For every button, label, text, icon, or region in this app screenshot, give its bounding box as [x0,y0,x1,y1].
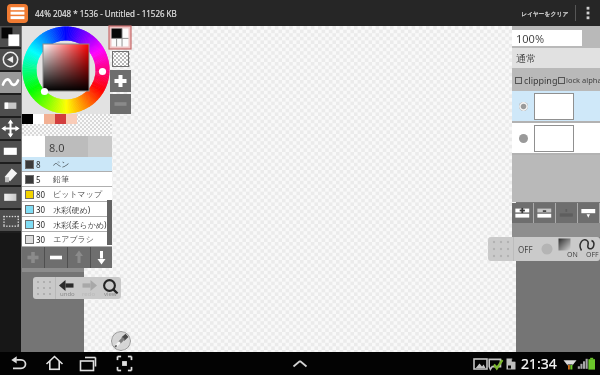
button[interactable]: 100% [512,30,582,46]
staticText: OFF [586,250,599,260]
button[interactable]: 5 [22,172,112,186]
button[interactable]: Layer action [512,203,533,223]
staticText: view [104,290,117,298]
staticText: redo [82,290,96,298]
button[interactable]: Tool [0,118,21,139]
button[interactable]: Menu [7,4,28,23]
staticText: エアブラシ [53,234,94,244]
button[interactable] [512,91,600,121]
staticText: clipping [524,74,558,86]
staticText: 30 [36,234,46,245]
staticText: 8 [36,159,41,170]
button[interactable]: Home [43,352,66,375]
button[interactable]: Redo [78,277,100,299]
button[interactable]: Add colour [110,70,131,92]
staticText: OFF [518,244,533,255]
button[interactable]: Tool [0,164,21,185]
button[interactable]: Transparent [112,51,129,67]
button[interactable]: Layer action [578,203,599,223]
button[interactable]: 30 [22,232,112,246]
button[interactable]: Fade on [558,237,579,261]
button[interactable]: 30 [22,217,112,231]
button[interactable]: More options [576,0,600,26]
staticText: 44% 2048 * 1536 - Untitled - 11526 KB [35,8,177,19]
staticText: 21:34 [521,354,557,373]
staticText: 水彩(柔らかめ) [53,219,107,230]
button[interactable]: 通常 [512,48,600,68]
staticText: 水彩(硬め) [53,204,91,215]
staticText: 30 [36,204,46,215]
button[interactable]: Tool [0,187,21,208]
staticText: ON [567,250,578,260]
button[interactable]: Brush action [45,247,67,268]
button[interactable]: Current colour [109,26,131,49]
button[interactable]: Colour picker [111,331,131,351]
button[interactable] [512,123,600,153]
button[interactable]: Remove colour [110,94,131,114]
staticText: 5 [36,174,41,185]
button[interactable]: Stabilizer off [514,237,536,261]
button[interactable]: Stabilizer settings off [579,237,600,261]
button[interactable]: Back [7,352,30,375]
button[interactable]: Tool [0,26,21,47]
button[interactable]: Brush opacity [536,237,558,261]
button[interactable]: View [100,277,121,299]
button[interactable]: Brush action [68,247,90,268]
staticText: 100% [516,31,545,46]
button[interactable]: Layer action [556,203,577,223]
button[interactable]: Tool [0,210,21,231]
staticText: 8.0 [49,140,65,155]
button[interactable]: Layer action [534,203,555,223]
staticText: ビットマップ [53,189,103,199]
button[interactable]: Brush action [91,247,112,268]
button[interactable]: Expand notifications [289,353,311,375]
staticText: 80 [36,189,46,200]
staticText: 鉛筆 [53,174,69,184]
staticText: 通常 [516,52,536,65]
button[interactable]: Undo [56,277,78,299]
button[interactable]: Recents [77,352,100,375]
button[interactable]: Tool [0,72,21,93]
button[interactable]: Tool [0,95,21,116]
staticText: 30 [36,219,46,230]
button[interactable]: lock alpha [558,75,600,85]
button[interactable]: clipping [515,74,558,86]
staticText: lock alpha [566,75,600,85]
button[interactable]: Brush action [22,247,44,268]
button[interactable]: レイヤーをクリア [515,10,575,17]
staticText: ペン [53,159,70,169]
button[interactable]: 30 [22,202,112,216]
button[interactable]: 80 [22,187,112,201]
button[interactable]: 8 [22,157,112,171]
button[interactable]: Tool [0,49,21,70]
button[interactable]: Tool [0,141,21,162]
staticText: undo [60,290,75,298]
staticText: レイヤーをクリア [521,10,569,17]
button[interactable]: Screenshot [113,352,136,375]
